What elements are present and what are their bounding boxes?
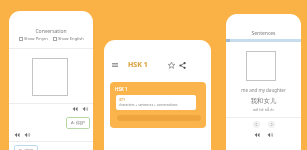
button[interactable]: Next [268,121,275,128]
button[interactable]: Play slowly [72,106,78,112]
button[interactable]: Show Pinyin [18,35,49,43]
button[interactable]: Play audio [24,132,30,138]
staticText: characters + sentences + conversations [119,103,178,107]
staticText: Show Pinyin [24,36,48,42]
staticText: wǒ hé nǚ ér [226,107,301,112]
button[interactable]: Play slowly [14,132,20,138]
button[interactable]: A: 你好! [66,117,90,129]
button[interactable]: Favorite [167,61,175,69]
staticText: Show English [58,36,84,42]
staticText: B: 你好! [19,148,34,150]
staticText: 我和女儿 [226,97,301,105]
button[interactable]: Play audio [267,132,273,138]
button[interactable]: B: 你好! [14,145,38,150]
staticText: 371 [119,97,126,102]
staticText: Sentences [226,30,301,37]
staticText: Conversation [9,28,93,35]
staticText: HSK 1 [128,60,148,70]
button[interactable]: HSK 1 [110,82,206,128]
button[interactable]: Previous [253,121,260,128]
button[interactable]: Show English [52,35,85,43]
button[interactable]: Play audio [82,106,88,112]
staticText: HSK 1 [115,86,128,92]
button[interactable]: Share [178,61,186,69]
button[interactable]: Play slowly [254,132,260,138]
staticText: me and my daughter [226,87,301,93]
staticText: A: 你好! [71,120,86,126]
button[interactable]: Menu [111,61,119,69]
